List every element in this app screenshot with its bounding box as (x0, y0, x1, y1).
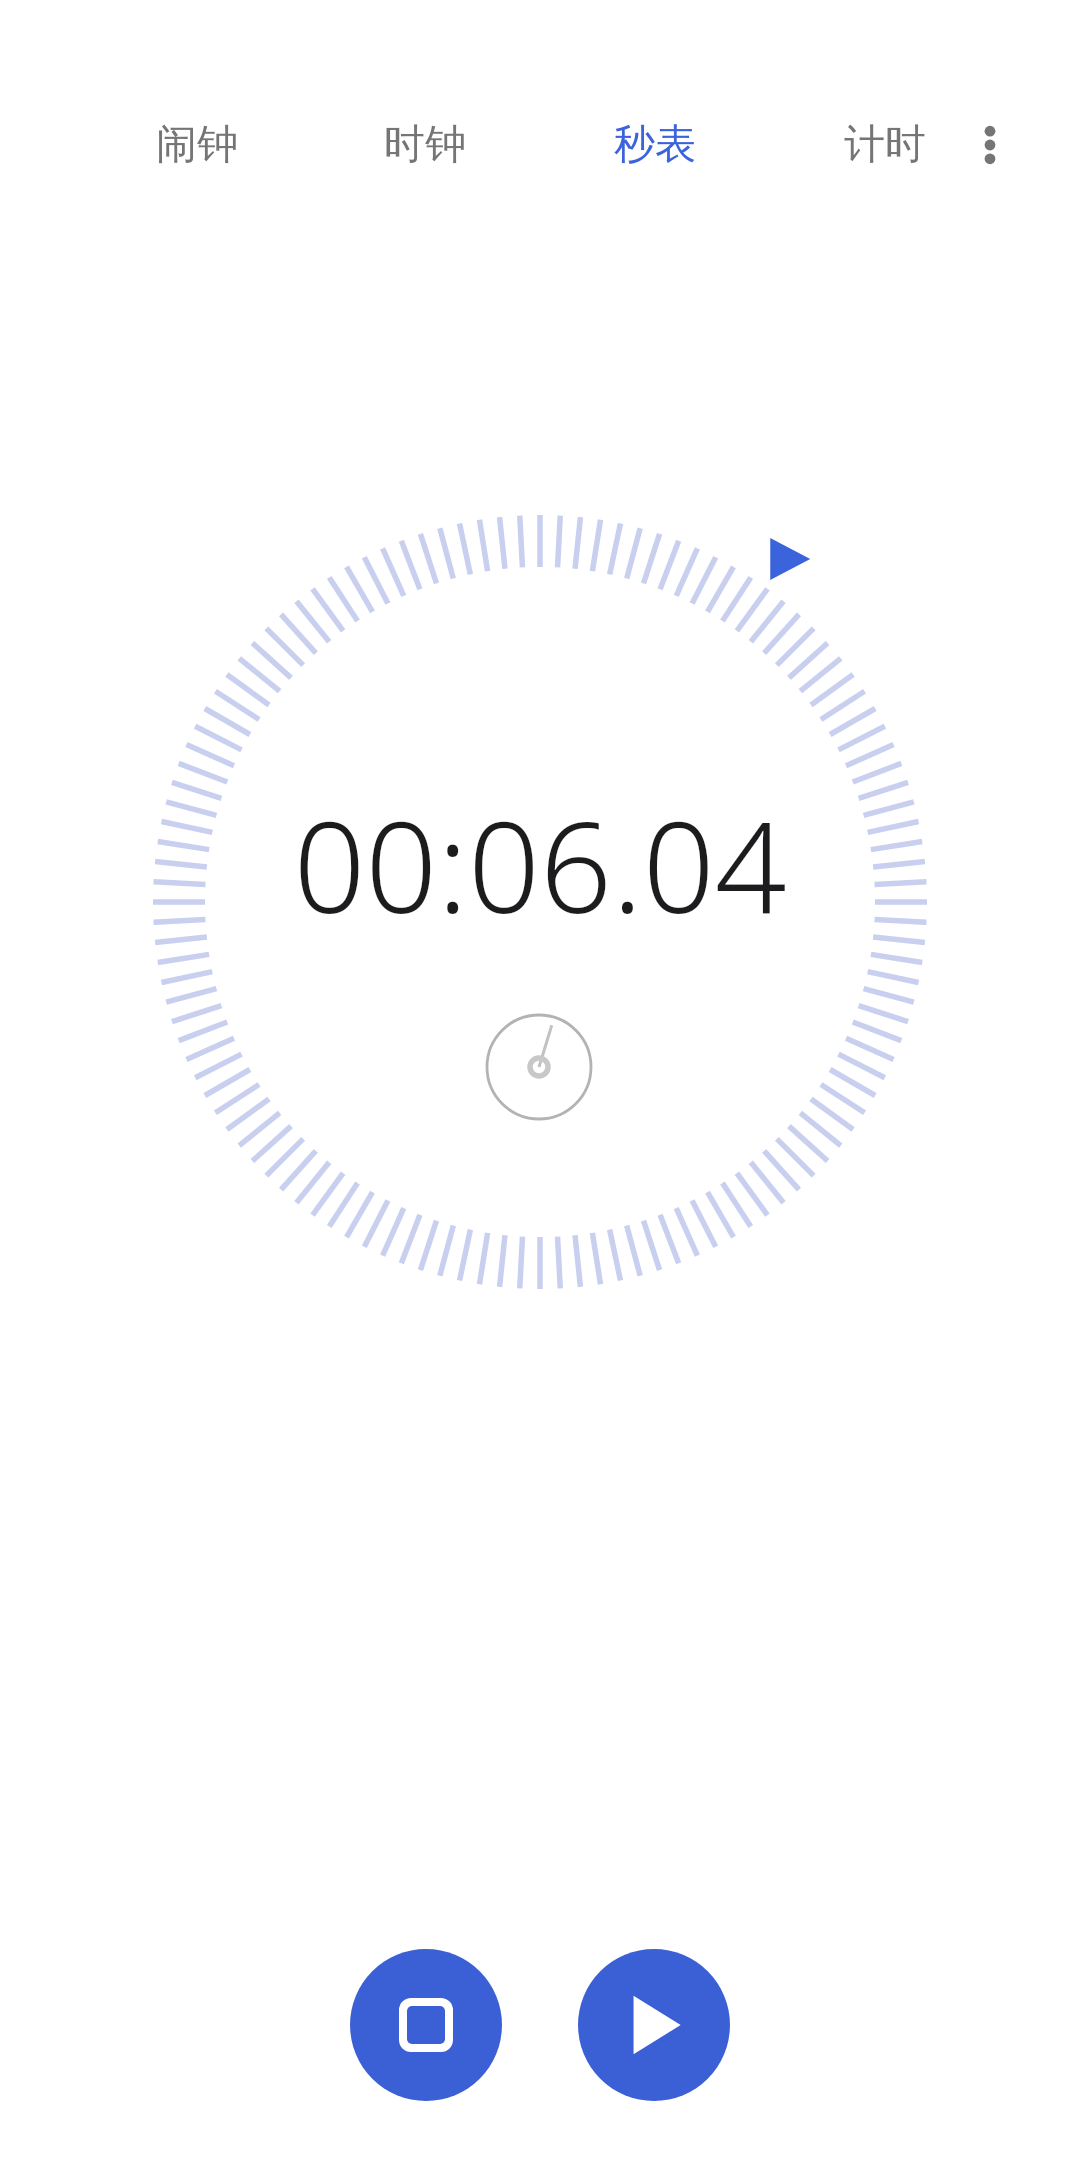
staticText: 时钟 (384, 119, 466, 171)
button[interactable]: Start (578, 1949, 730, 2101)
staticText: 00:06.04 (293, 778, 787, 950)
button[interactable]: More options (945, 97, 1035, 193)
button[interactable]: 计时 (790, 90, 980, 200)
button[interactable]: Stop (350, 1949, 502, 2101)
button[interactable]: 闹钟 (102, 90, 292, 200)
staticText: 秒表 (614, 119, 696, 171)
staticText: 计时 (844, 119, 926, 171)
button[interactable]: 秒表 (560, 90, 750, 200)
button[interactable]: 时钟 (330, 90, 520, 200)
staticText: 闹钟 (156, 119, 238, 171)
